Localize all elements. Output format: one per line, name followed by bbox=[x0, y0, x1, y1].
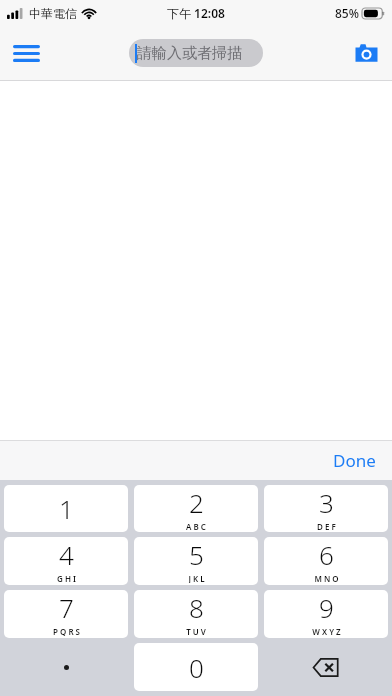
button[interactable]: Scan with camera bbox=[344, 31, 388, 75]
button[interactable]: 8 bbox=[134, 590, 258, 638]
staticText: T U V bbox=[186, 626, 206, 636]
staticText: 5 bbox=[189, 537, 204, 572]
staticText: 1 bbox=[59, 491, 74, 526]
staticText: 9 bbox=[319, 590, 334, 625]
button[interactable]: 1 bbox=[4, 485, 128, 532]
button[interactable]: 0 bbox=[134, 643, 258, 691]
staticText: 3 bbox=[319, 485, 334, 520]
staticText: P Q R S bbox=[53, 626, 80, 636]
staticText: A B C bbox=[186, 521, 206, 530]
button[interactable]: Decimal point bbox=[4, 643, 128, 691]
staticText: 請輸入或者掃描 bbox=[137, 44, 242, 63]
staticText: G H I bbox=[57, 573, 76, 583]
staticText: 85% bbox=[335, 5, 359, 21]
button[interactable]: 5 bbox=[134, 537, 258, 585]
button[interactable]: Done bbox=[323, 443, 386, 478]
staticText: J K L bbox=[188, 573, 205, 583]
button[interactable]: 7 bbox=[4, 590, 128, 638]
staticText: D E F bbox=[317, 521, 336, 530]
staticText: 8 bbox=[189, 590, 204, 625]
staticText: Done bbox=[333, 449, 376, 472]
staticText: 0 bbox=[189, 650, 204, 685]
button[interactable]: 6 bbox=[264, 537, 388, 585]
button[interactable]: 2 bbox=[134, 485, 258, 532]
button[interactable]: 3 bbox=[264, 485, 388, 532]
button[interactable]: Menu bbox=[4, 31, 48, 75]
staticText: 中華電信 bbox=[29, 6, 77, 21]
button[interactable]: 9 bbox=[264, 590, 388, 638]
button[interactable]: 4 bbox=[4, 537, 128, 585]
button[interactable]: 請輸入或者掃描 bbox=[129, 39, 263, 67]
staticText: 6 bbox=[319, 537, 334, 572]
staticText: 2 bbox=[189, 485, 204, 520]
staticText: 4 bbox=[59, 537, 74, 572]
staticText: 7 bbox=[59, 590, 74, 625]
staticText: M N O bbox=[314, 573, 339, 583]
button[interactable]: Backspace bbox=[264, 643, 388, 691]
staticText: 下午 12:08 bbox=[167, 5, 225, 21]
staticText: W X Y Z bbox=[312, 626, 341, 636]
